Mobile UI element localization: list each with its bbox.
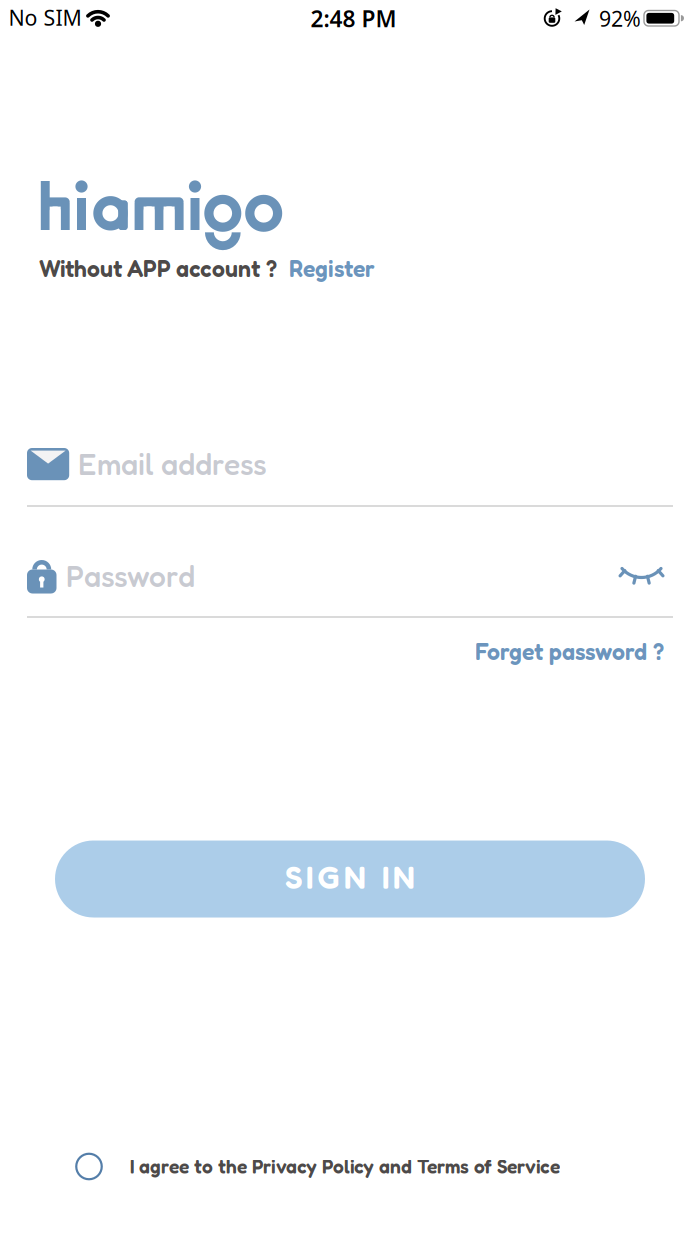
staticText: Without APP account ? — [39, 255, 277, 282]
staticText: 92% — [599, 4, 641, 33]
button[interactable]: Email address — [0, 434, 700, 494]
staticText: Forget password ? — [475, 637, 664, 665]
button[interactable]: Agree to terms — [76, 1154, 102, 1179]
button[interactable]: Register — [289, 255, 375, 282]
staticText: Password — [66, 558, 195, 594]
staticText: 2:48 PM — [310, 3, 396, 33]
button[interactable]: SIGN IN — [55, 840, 645, 917]
staticText: Email address — [78, 446, 267, 482]
staticText: Register — [289, 255, 375, 282]
staticText: SIGN IN — [285, 858, 415, 896]
staticText: No SIM — [8, 3, 81, 32]
button[interactable]: Forget password ? — [475, 637, 664, 665]
staticText: I agree to the Privacy Policy and Terms … — [130, 1155, 560, 1178]
button[interactable]: Show password — [620, 565, 662, 586]
button[interactable]: Password — [0, 546, 700, 606]
